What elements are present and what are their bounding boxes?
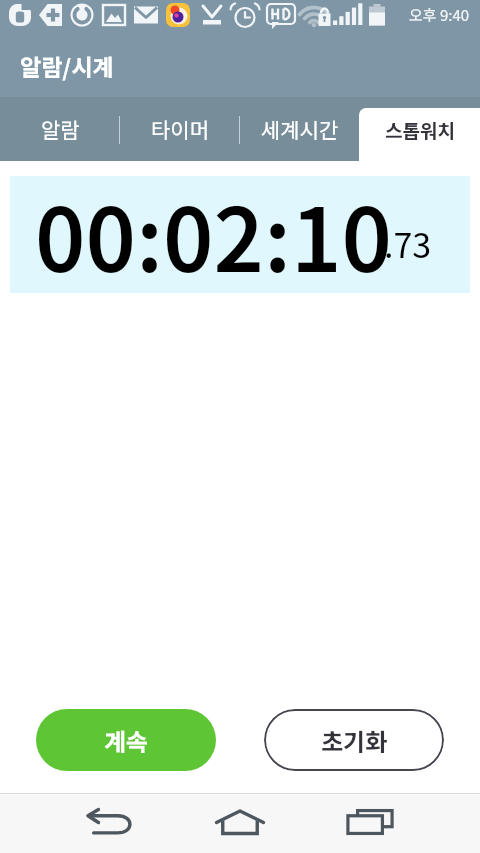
staticText: 알람 [41,114,80,144]
button[interactable]: 타이머 [120,97,240,161]
button[interactable]: Back [70,793,150,851]
staticText: 스톱워치 [385,116,455,144]
staticText: 초기화 [321,723,388,758]
button[interactable]: 스톱워치 [359,108,480,161]
staticText: 오후 9:40 [409,4,470,26]
button[interactable]: 초기화 [264,709,444,771]
button[interactable]: 알람 [0,97,120,161]
staticText: 알람/시계 [20,49,114,82]
button[interactable]: 계속 [36,709,216,771]
staticText: 타이머 [151,114,209,144]
button[interactable]: Home [200,793,280,851]
staticText: .73 [384,219,432,268]
button[interactable]: 00:02:10 [10,176,470,293]
staticText: 세계시간 [261,114,339,144]
staticText: 계속 [104,723,149,758]
button[interactable]: 세계시간 [240,97,360,161]
staticText: 00:02:10 [35,171,392,288]
button[interactable]: Recent apps [330,793,410,851]
